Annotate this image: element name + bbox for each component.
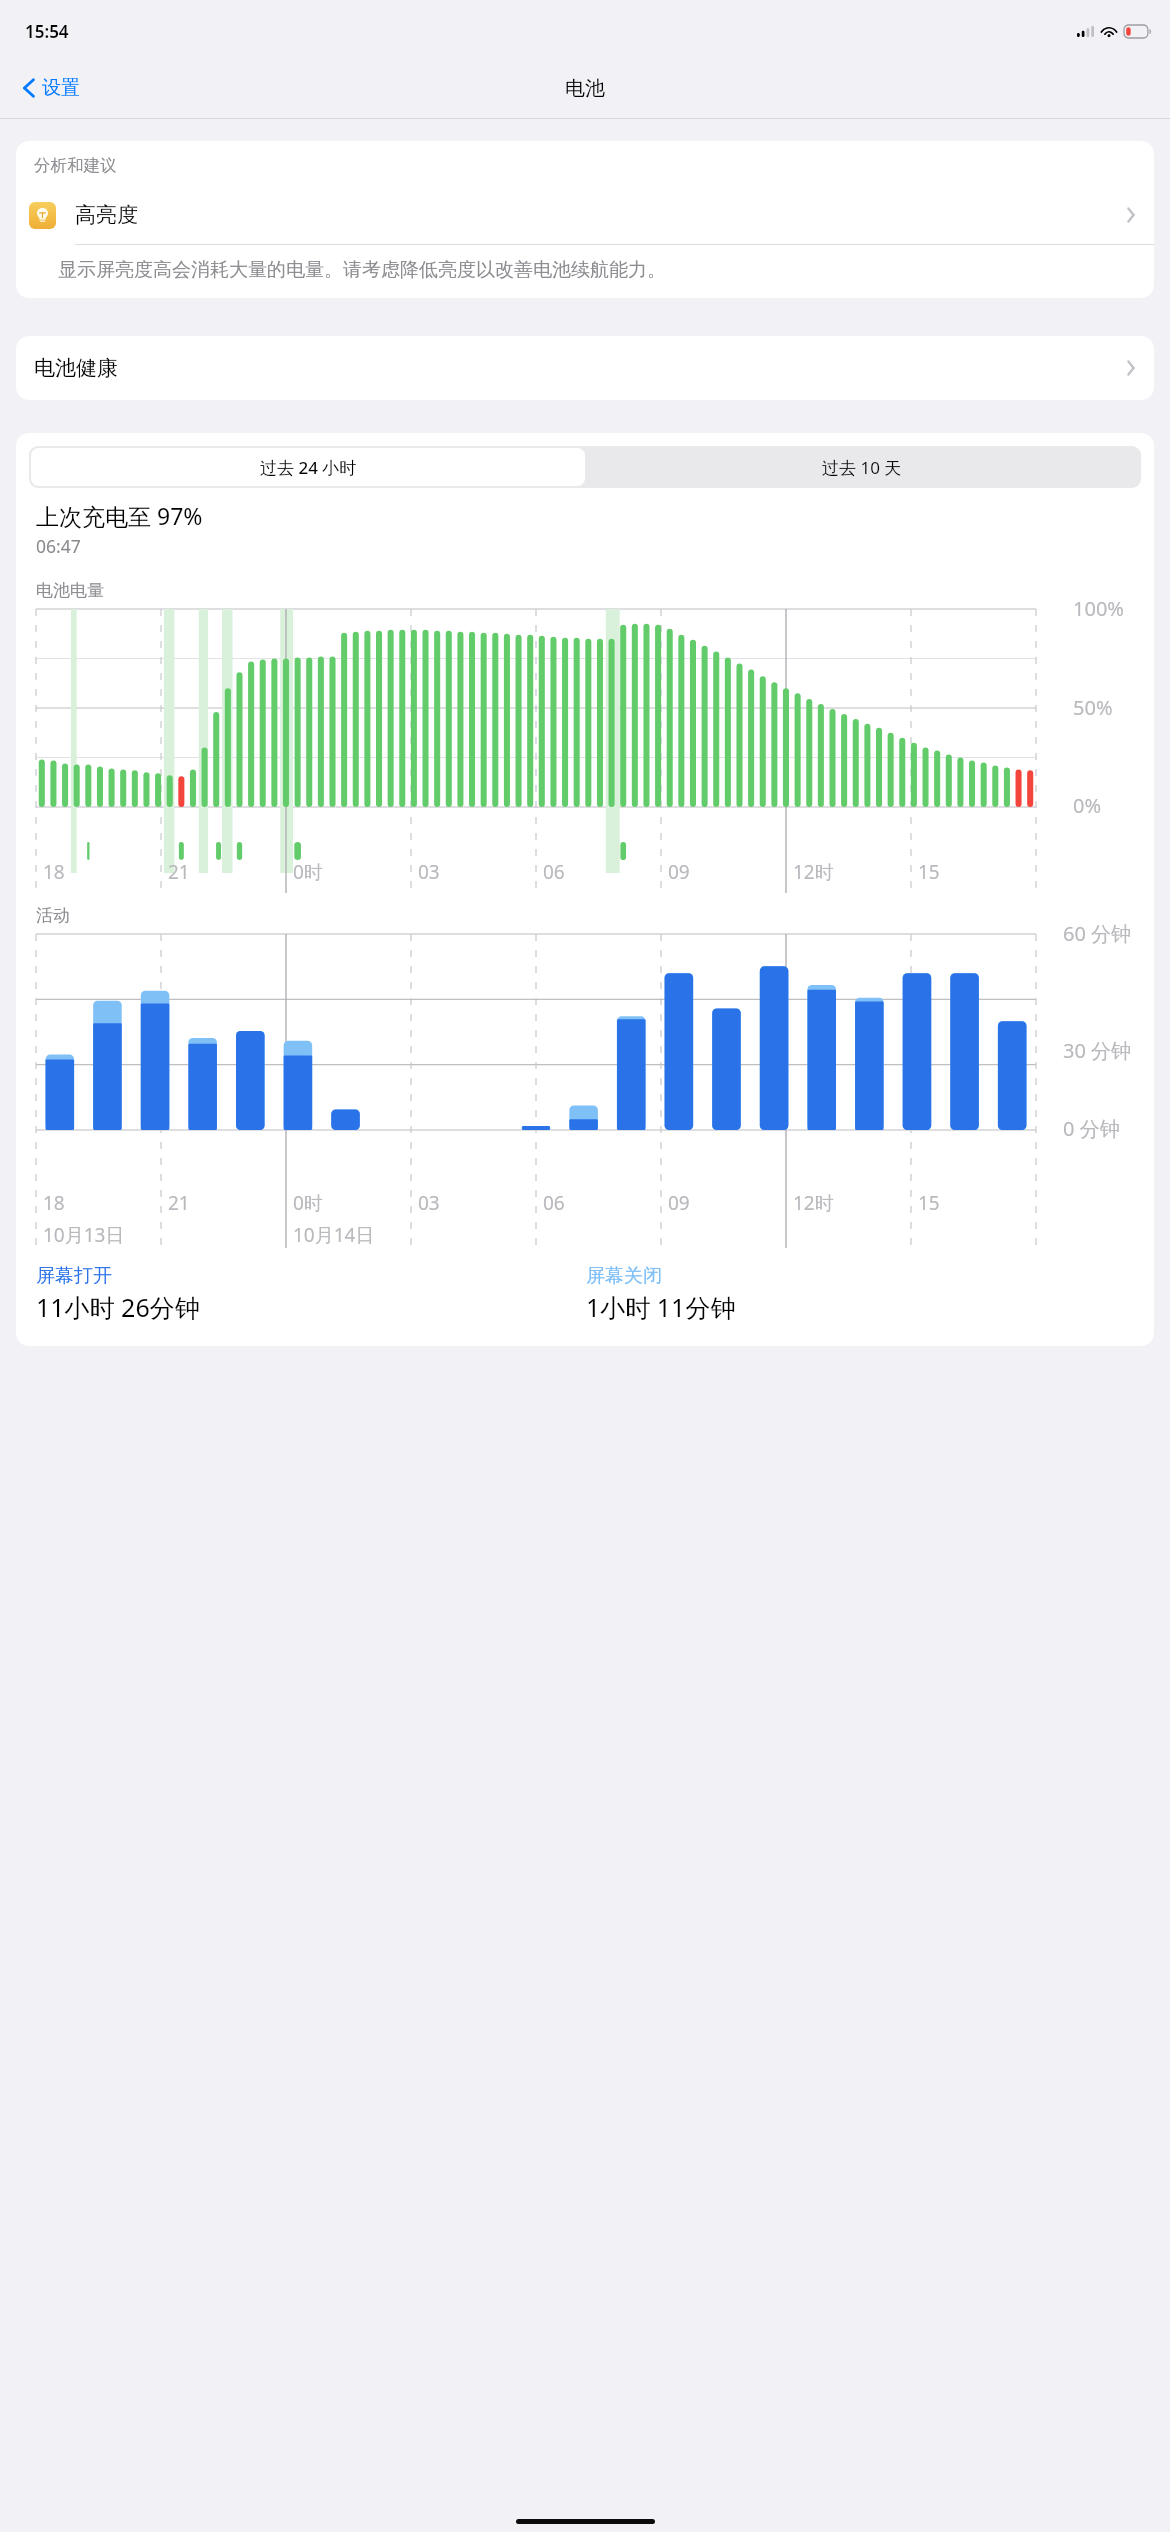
staticText: 12时: [793, 1190, 834, 1216]
staticText: 0时: [293, 859, 323, 885]
button[interactable]: 高亮度: [16, 186, 1154, 244]
staticText: 03: [418, 1190, 440, 1216]
staticText: 过去 24 小时: [260, 456, 357, 479]
staticText: 12时: [793, 859, 834, 885]
staticText: 11小时 26分钟: [36, 1290, 200, 1324]
staticText: 0时: [293, 1190, 323, 1216]
staticText: 30 分钟: [1063, 1037, 1132, 1064]
staticText: 18: [43, 859, 65, 885]
staticText: 15: [918, 859, 940, 885]
button[interactable]: 过去 10 天: [585, 448, 1139, 486]
staticText: 21: [168, 1190, 190, 1216]
staticText: 1小时 11分钟: [586, 1290, 736, 1324]
staticText: 15:54: [25, 20, 69, 43]
staticText: 10月14日: [293, 1222, 375, 1248]
staticText: 高亮度: [75, 202, 1126, 228]
staticText: 0 分钟: [1063, 1115, 1120, 1142]
staticText: 0%: [1073, 792, 1102, 819]
staticText: 06:47: [36, 534, 81, 558]
staticText: 60 分钟: [1063, 920, 1132, 947]
staticText: 显示屏亮度高会消耗大量的电量。请考虑降低亮度以改善电池续航能力。: [58, 258, 666, 282]
staticText: 过去 10 天: [822, 456, 902, 479]
button[interactable]: 电池健康: [16, 336, 1154, 400]
staticText: 屏幕关闭: [586, 1264, 662, 1288]
staticText: 设置: [42, 76, 80, 100]
staticText: 活动: [36, 905, 70, 926]
staticText: 21: [168, 859, 190, 885]
staticText: 09: [668, 859, 690, 885]
staticText: 09: [668, 1190, 690, 1216]
staticText: 06: [543, 1190, 565, 1216]
staticText: 15: [918, 1190, 940, 1216]
staticText: 电池电量: [36, 580, 104, 601]
staticText: 10月13日: [43, 1222, 125, 1248]
staticText: 100%: [1073, 595, 1124, 622]
staticText: 分析和建议: [34, 155, 117, 176]
staticText: 上次充电至 97%: [36, 500, 203, 531]
staticText: 50%: [1073, 694, 1113, 721]
staticText: 电池健康: [34, 355, 1126, 381]
staticText: 18: [43, 1190, 65, 1216]
button[interactable]: 设置: [12, 70, 90, 106]
button[interactable]: 过去 24 小时: [31, 448, 585, 486]
staticText: 06: [543, 859, 565, 885]
staticText: 电池: [565, 76, 605, 101]
staticText: 屏幕打开: [36, 1264, 112, 1288]
staticText: 03: [418, 859, 440, 885]
